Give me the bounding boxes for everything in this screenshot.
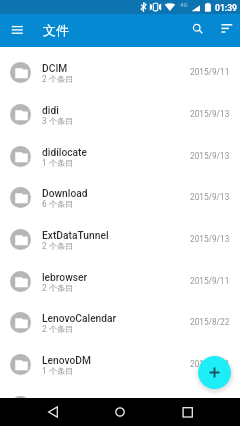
button[interactable]: Back [42,401,66,425]
staticText: 2015/8/22 [190,317,230,327]
staticText: 2015/9/11 [190,359,230,369]
staticText: ExtDataTunnel [42,229,109,241]
staticText: didilocate [42,146,87,158]
staticText: DCIM [42,62,68,74]
button[interactable]: didi [0,94,240,135]
button[interactable]: Open navigation drawer [6,19,28,41]
staticText: Download [42,187,88,199]
staticText: 2015/9/13 [190,234,230,244]
button[interactable]: Recents [175,401,199,425]
staticText: 2 个条目 [42,324,74,334]
staticText: LenovoCalendar [42,312,117,324]
staticText: 4G [180,1,188,8]
staticText: 2015/9/13 [190,151,230,161]
staticText: 2015/9/11 [190,67,230,77]
staticText: 2015/9/13 [190,109,230,119]
button[interactable]: lebrowser [0,261,240,302]
staticText: 6 个条目 [42,199,74,209]
button[interactable]: LenovoDM [0,344,240,385]
staticText: 3 个条目 [42,116,74,126]
staticText: 2 个条目 [42,283,74,293]
staticText: LenovoDM [42,354,91,366]
staticText: 2 个条目 [42,241,74,251]
staticText: 1 个条目 [42,158,74,168]
staticText: 01:39 [215,3,237,13]
staticText: 2015/9/13 [190,192,230,202]
button[interactable]: Add [198,356,231,389]
staticText: 1 个条目 [42,366,74,376]
staticText: lebrowser [42,271,88,283]
staticText: 2015/9/11 [190,276,230,286]
button[interactable]: DCIM [0,52,240,93]
button[interactable]: Search [186,19,208,41]
button[interactable]: Home [108,401,132,425]
button[interactable]: LenovoReaper [0,386,240,398]
staticText: didi [42,104,59,116]
staticText: 2 个条目 [42,74,74,84]
button[interactable]: didilocate [0,136,240,177]
button[interactable]: Sort [212,19,234,41]
button[interactable]: LenovoCalendar [0,302,240,343]
staticText: 文件 [43,22,69,38]
button[interactable]: ExtDataTunnel [0,219,240,260]
button[interactable]: Download [0,177,240,218]
